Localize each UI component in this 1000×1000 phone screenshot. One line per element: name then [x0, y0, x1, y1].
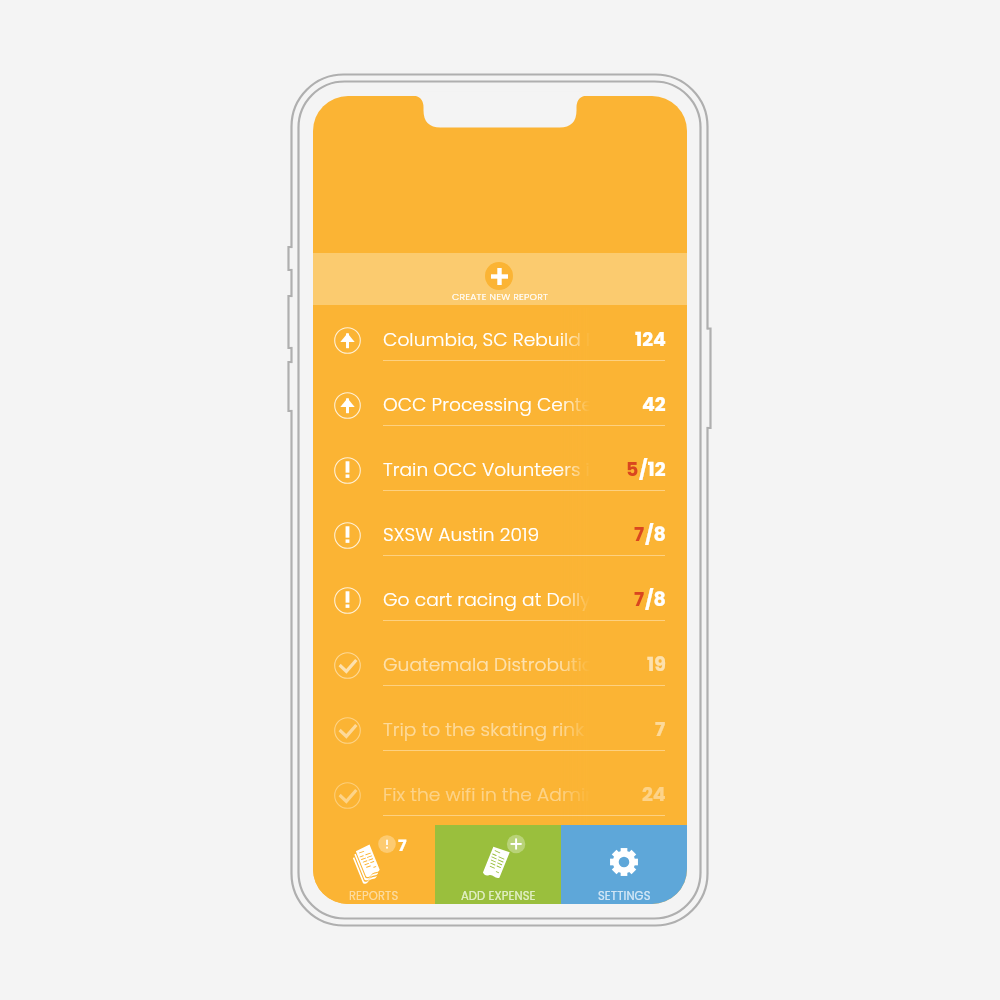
other: Reports	[348, 839, 414, 885]
staticText: SXSW Austin 2019	[383, 521, 540, 547]
staticText: 42	[642, 391, 666, 418]
staticText: ADD EXPENSE	[461, 888, 536, 904]
other: Add expense	[472, 839, 532, 885]
button[interactable]: SXSW Austin 2019	[313, 503, 687, 568]
button[interactable]: Train OCC Volunteers in Chicago	[313, 438, 687, 503]
staticText: /8	[645, 586, 666, 613]
staticText: 19	[647, 651, 666, 678]
staticText: Train OCC Volunteers in Chicago	[383, 456, 590, 482]
staticText: /12	[639, 456, 666, 483]
staticText: CREATE NEW REPORT	[452, 290, 549, 303]
button[interactable]: Columbia, SC Rebuild Project	[313, 308, 687, 373]
button[interactable]: OCC Processing Center Supplies	[313, 373, 687, 438]
button[interactable]: Settings	[561, 825, 687, 904]
staticText: Go cart racing at Dollywood	[383, 586, 590, 612]
staticText: SETTINGS	[598, 888, 651, 904]
staticText: REPORTS	[349, 888, 399, 904]
staticText: /8	[645, 521, 666, 548]
staticText: Trip to the skating rink in Texas	[383, 716, 590, 742]
staticText: 7	[634, 586, 645, 613]
staticText: 124	[635, 326, 666, 353]
staticText: 24	[642, 781, 666, 808]
staticText: 7	[398, 834, 407, 856]
button[interactable]: Trip to the skating rink in Texas	[313, 698, 687, 763]
staticText: Fix the wifi in the Admin Building	[383, 781, 590, 807]
other: Settings	[601, 839, 647, 885]
button[interactable]: Reports	[313, 825, 435, 904]
staticText: Guatemala Distrobution Trip	[383, 651, 590, 677]
staticText: OCC Processing Center Supplies	[383, 391, 590, 417]
button[interactable]: Add expense	[435, 825, 561, 904]
button[interactable]: Go cart racing at Dollywood	[313, 568, 687, 633]
staticText: Columbia, SC Rebuild Project	[383, 326, 590, 352]
staticText: 7	[655, 716, 666, 743]
staticText: 5	[626, 456, 639, 483]
button[interactable]: Fix the wifi in the Admin Building	[313, 763, 687, 828]
button[interactable]: Guatemala Distrobution Trip	[313, 633, 687, 698]
staticText: 7	[634, 521, 645, 548]
button[interactable]: CREATE NEW REPORT	[313, 253, 687, 305]
